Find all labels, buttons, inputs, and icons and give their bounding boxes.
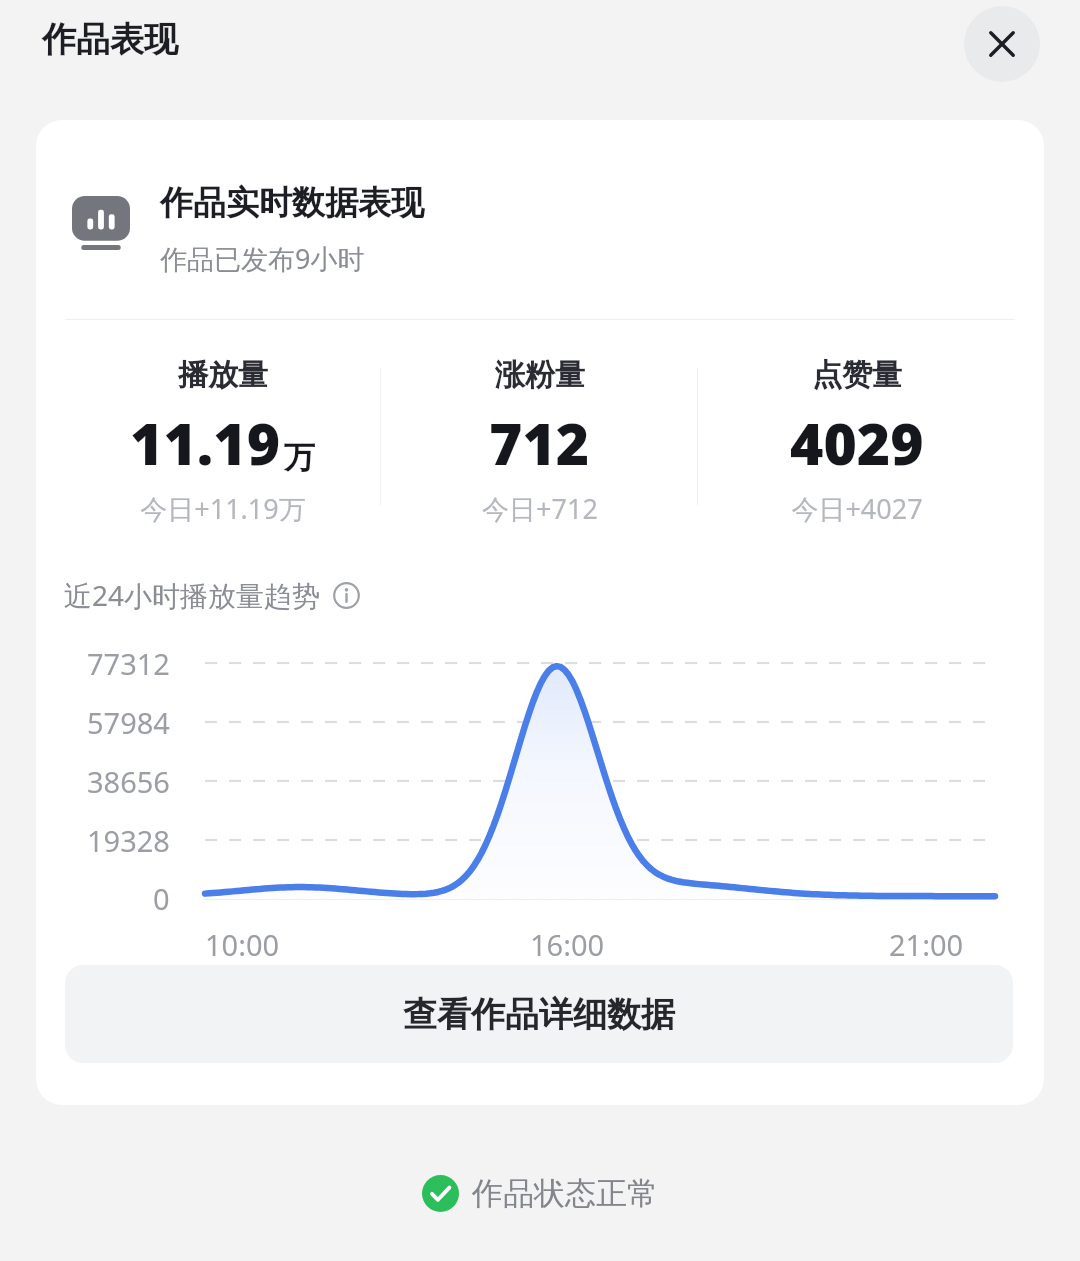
staticText: 作品实时数据表现 bbox=[160, 182, 424, 224]
staticText: 播放量 bbox=[178, 356, 268, 394]
staticText: 作品表现 bbox=[42, 18, 178, 61]
staticText: 16:00 bbox=[530, 925, 605, 964]
staticText: 查看作品详细数据 bbox=[403, 993, 675, 1036]
button[interactable]: 说明 bbox=[331, 580, 361, 610]
staticText: 万 bbox=[284, 438, 315, 477]
staticText: 57984 bbox=[87, 703, 170, 742]
button[interactable]: 查看作品详细数据 bbox=[65, 965, 1013, 1063]
staticText: 38656 bbox=[87, 762, 170, 801]
button[interactable]: 关闭 bbox=[964, 6, 1040, 82]
staticText: 19328 bbox=[87, 821, 170, 860]
staticText: 近24小时播放量趋势 bbox=[64, 576, 321, 614]
staticText: 11.19 bbox=[130, 404, 281, 482]
staticText: 今日+11.19万 bbox=[140, 490, 306, 527]
staticText: 作品已发布9小时 bbox=[160, 240, 365, 277]
staticText: 10:00 bbox=[205, 925, 280, 964]
staticText: 作品状态正常 bbox=[472, 1174, 658, 1213]
staticText: 0 bbox=[153, 879, 170, 918]
button[interactable]: 播放量 bbox=[65, 356, 380, 527]
staticText: 712 bbox=[489, 404, 590, 482]
staticText: 涨粉量 bbox=[495, 356, 585, 394]
button[interactable]: 涨粉量 bbox=[382, 356, 697, 527]
staticText: 4029 bbox=[790, 404, 924, 482]
staticText: 今日+712 bbox=[482, 490, 598, 527]
staticText: 21:00 bbox=[889, 925, 964, 964]
staticText: 今日+4027 bbox=[791, 490, 923, 527]
staticText: 77312 bbox=[87, 644, 170, 683]
staticText: 点赞量 bbox=[812, 356, 902, 394]
button[interactable]: 点赞量 bbox=[699, 356, 1014, 527]
